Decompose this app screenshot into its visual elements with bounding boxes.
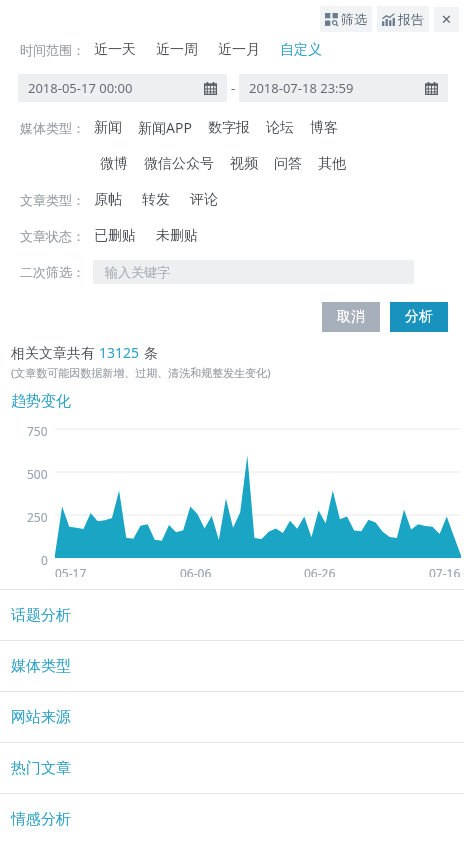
- staticText: 近一周: [156, 41, 198, 59]
- staticText: 分析: [405, 308, 433, 326]
- staticText: 话题分析: [11, 606, 71, 625]
- staticText: 其他: [318, 155, 346, 173]
- button[interactable]: 分析: [390, 302, 448, 332]
- button[interactable]: Filter: [320, 6, 372, 32]
- staticText: 媒体类型：: [20, 120, 85, 136]
- button[interactable]: Report: [377, 6, 429, 32]
- staticText: 二次筛选：: [20, 264, 85, 280]
- staticText: 相关文章共有: [11, 343, 99, 362]
- staticText: 视频: [230, 155, 258, 173]
- staticText: 取消: [337, 308, 365, 326]
- button[interactable]: 新闻APP: [135, 115, 195, 140]
- button[interactable]: 2018-07-18 23:59: [239, 74, 448, 102]
- staticText: 输入关键字: [105, 264, 170, 280]
- button[interactable]: 近一天: [91, 38, 139, 62]
- button[interactable]: 近一周: [153, 38, 201, 62]
- button[interactable]: 2018-05-17 00:00: [18, 74, 227, 102]
- staticText: 博客: [310, 119, 338, 137]
- button[interactable]: 话题分析: [0, 589, 464, 640]
- staticText: 文章状态：: [20, 228, 85, 244]
- button[interactable]: 微博: [97, 152, 131, 176]
- button[interactable]: 问答: [271, 152, 305, 176]
- staticText: 500: [27, 466, 48, 482]
- button[interactable]: 情感分析: [0, 793, 464, 844]
- staticText: 250: [27, 509, 48, 525]
- staticText: 07-16: [429, 565, 461, 577]
- staticText: 2018-05-17 00:00: [28, 79, 133, 97]
- staticText: 网站来源: [11, 708, 71, 727]
- button[interactable]: 近一月: [215, 38, 263, 62]
- staticText: 近一月: [218, 41, 260, 59]
- button[interactable]: 已删贴: [91, 224, 139, 248]
- staticText: ✕: [441, 12, 452, 27]
- staticText: 数字报: [208, 119, 250, 137]
- staticText: 750: [27, 423, 48, 439]
- staticText: 评论: [190, 191, 218, 209]
- staticText: 13125: [99, 343, 140, 362]
- button[interactable]: 自定义: [277, 38, 325, 62]
- staticText: 06-26: [304, 565, 336, 577]
- staticText: 06-06: [180, 565, 212, 577]
- staticText: 近一天: [94, 41, 136, 59]
- staticText: 新闻APP: [138, 118, 192, 137]
- button[interactable]: 视频: [227, 152, 261, 176]
- button[interactable]: 热门文章: [0, 742, 464, 793]
- button[interactable]: 数字报: [205, 116, 253, 140]
- staticText: 自定义: [280, 41, 322, 59]
- staticText: 已删贴: [94, 227, 136, 245]
- button[interactable]: 网站来源: [0, 691, 464, 742]
- button[interactable]: 原帖: [91, 188, 125, 212]
- staticText: 问答: [274, 155, 302, 173]
- staticText: 趋势变化: [11, 392, 71, 411]
- staticText: 转发: [142, 191, 170, 209]
- button[interactable]: 媒体类型: [0, 640, 464, 691]
- staticText: 报告: [398, 11, 424, 27]
- button[interactable]: 新闻: [91, 116, 125, 140]
- staticText: 条: [140, 343, 158, 362]
- staticText: 未删贴: [156, 227, 198, 245]
- button[interactable]: 取消: [322, 302, 380, 332]
- staticText: 微博: [100, 155, 128, 173]
- staticText: 文章类型：: [20, 192, 85, 208]
- staticText: 热门文章: [11, 759, 71, 778]
- button[interactable]: 其他: [315, 152, 349, 176]
- button[interactable]: 博客: [307, 116, 341, 140]
- staticText: 筛选: [341, 11, 367, 27]
- staticText: 论坛: [266, 119, 294, 137]
- staticText: 05-17: [55, 565, 87, 577]
- staticText: 原帖: [94, 191, 122, 209]
- staticText: 媒体类型: [11, 657, 71, 676]
- staticText: 0: [41, 552, 48, 568]
- button[interactable]: 输入关键字: [93, 260, 414, 284]
- staticText: -: [231, 79, 236, 97]
- button[interactable]: 评论: [187, 188, 221, 212]
- button[interactable]: 转发: [139, 188, 173, 212]
- staticText: (文章数可能因数据新增、过期、清洗和规整发生变化): [11, 365, 271, 380]
- staticText: 情感分析: [11, 810, 71, 829]
- button[interactable]: 未删贴: [153, 224, 201, 248]
- staticText: 新闻: [94, 119, 122, 137]
- button[interactable]: 微信公众号: [141, 152, 217, 176]
- button[interactable]: Close: [434, 7, 459, 32]
- button[interactable]: 论坛: [263, 116, 297, 140]
- staticText: 2018-07-18 23:59: [249, 79, 354, 97]
- staticText: 微信公众号: [144, 155, 214, 173]
- staticText: 时间范围：: [20, 42, 85, 58]
